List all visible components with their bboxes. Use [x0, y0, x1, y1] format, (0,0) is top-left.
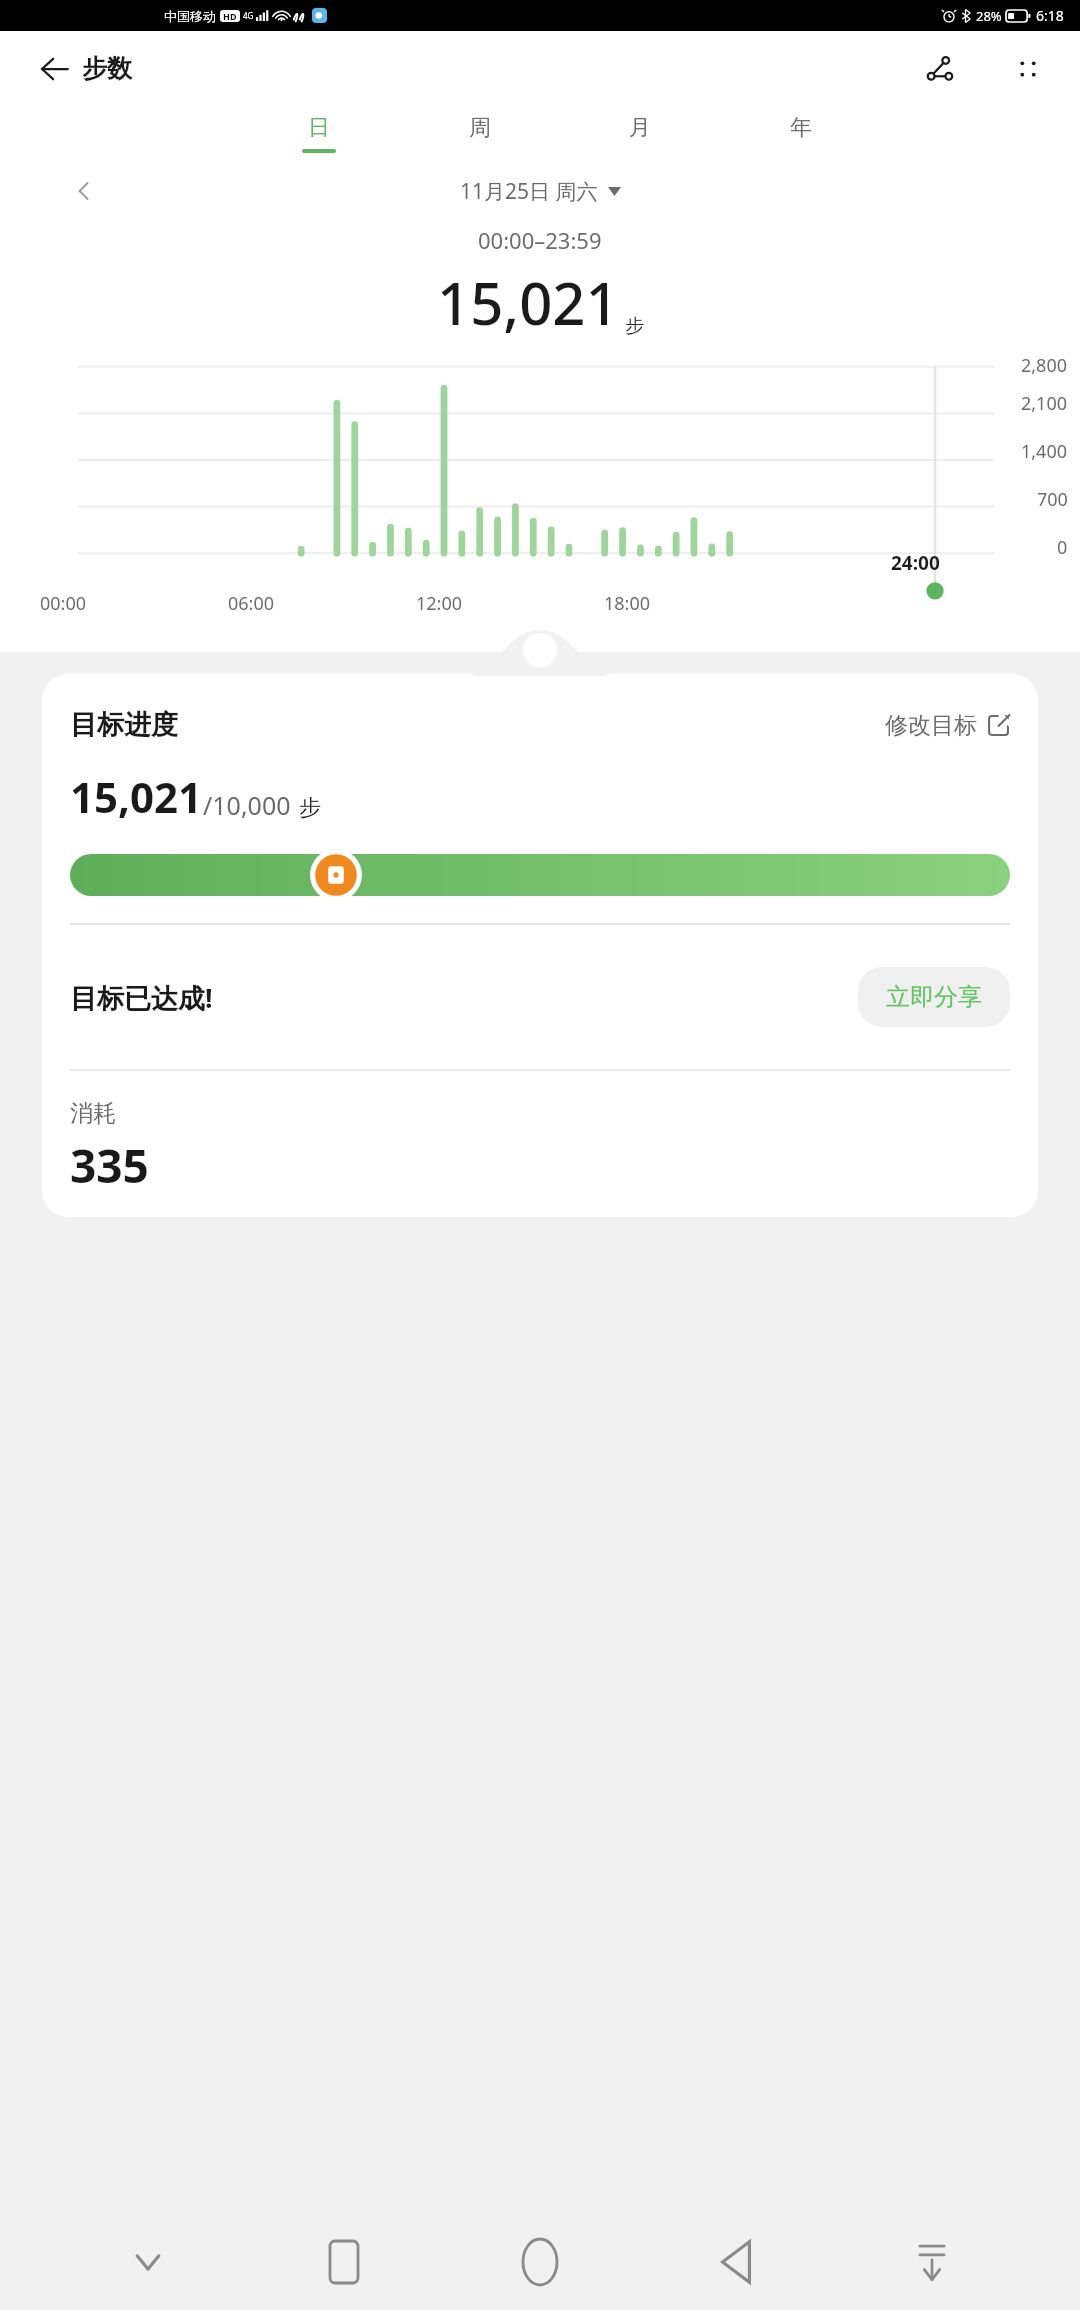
staticText: 2,800 — [1021, 353, 1068, 378]
staticText: 年 — [790, 114, 812, 142]
staticText: 12:00 — [416, 591, 463, 616]
staticText: 28% — [976, 7, 1002, 25]
button[interactable]: 修改目标 — [885, 711, 1010, 740]
staticText: 日 — [308, 114, 330, 142]
staticText: 4G — [243, 10, 254, 21]
staticText: 6:18 — [1036, 6, 1064, 25]
staticText: 1,400 — [1021, 439, 1068, 464]
button[interactable]: Recents — [296, 2214, 392, 2310]
staticText: 目标已达成! — [70, 979, 213, 1016]
staticText: 06:00 — [228, 591, 275, 616]
staticText: 步 — [299, 794, 321, 822]
button[interactable]: More options — [1002, 43, 1054, 95]
staticText: 15,021 — [437, 263, 619, 342]
button[interactable]: 日 — [290, 106, 348, 161]
staticText: 步 — [625, 314, 644, 338]
button[interactable]: Previous day — [60, 167, 108, 215]
button[interactable]: Download — [884, 2214, 980, 2310]
staticText: 消耗 — [70, 1099, 116, 1128]
button[interactable]: Share — [914, 43, 966, 95]
button[interactable]: Home — [492, 2214, 588, 2310]
button[interactable]: 立即分享 — [858, 967, 1010, 1027]
staticText: 24:00 — [891, 550, 940, 576]
staticText: 11月25日 周六 — [460, 177, 598, 206]
staticText: 中国移动 — [164, 8, 216, 24]
staticText: 700 — [1037, 487, 1068, 512]
staticText: 步数 — [82, 53, 132, 84]
staticText: /10,000 — [203, 788, 291, 822]
staticText: 18:00 — [604, 591, 651, 616]
button[interactable]: Back — [28, 43, 80, 95]
button[interactable]: 年 — [772, 106, 830, 161]
staticText: 15,021 — [70, 768, 203, 825]
staticText: 335 — [70, 1134, 149, 1197]
staticText: 周 — [469, 114, 491, 142]
staticText: 00:00–23:59 — [478, 225, 602, 255]
button[interactable]: 周 — [451, 106, 509, 161]
staticText: 目标进度 — [70, 708, 178, 742]
button[interactable]: Back — [688, 2214, 784, 2310]
staticText: 2,100 — [1021, 391, 1068, 416]
staticText: 修改目标 — [885, 711, 977, 740]
staticText: 00:00 — [40, 591, 87, 616]
staticText: HD — [223, 10, 237, 22]
staticText: 月 — [629, 114, 651, 142]
button[interactable]: 月 — [611, 106, 669, 161]
button[interactable]: Collapse keyboard — [100, 2214, 196, 2310]
staticText: 0 — [1057, 535, 1068, 560]
staticText: 立即分享 — [886, 982, 982, 1012]
